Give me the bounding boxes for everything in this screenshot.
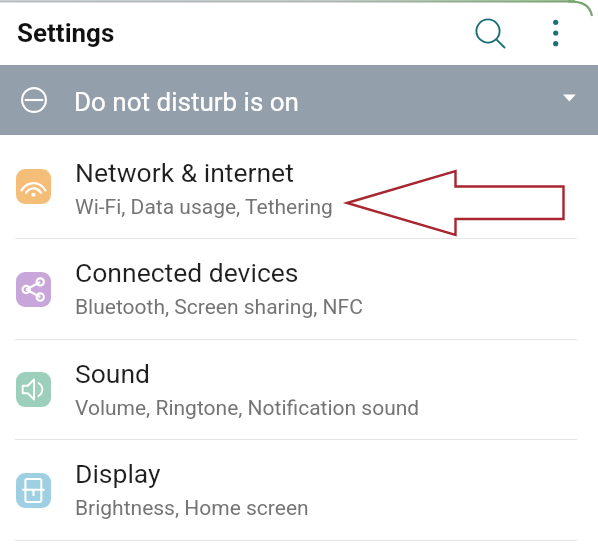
- staticText: Connected devices: [75, 257, 299, 288]
- staticText: Display: [75, 458, 161, 489]
- staticText: Settings: [17, 18, 115, 48]
- button[interactable]: Connected devices: [0, 239, 598, 339]
- staticText: Network & internet: [75, 157, 294, 188]
- button[interactable]: Display: [0, 440, 598, 540]
- staticText: Do not disturb is on: [74, 87, 299, 117]
- staticText: Volume, Ringtone, Notification sound: [75, 396, 420, 421]
- button[interactable]: Do not disturb is on: [0, 65, 598, 135]
- button[interactable]: More options: [532, 9, 580, 57]
- button[interactable]: Search: [464, 7, 512, 55]
- button[interactable]: Sound: [0, 340, 598, 439]
- button[interactable]: Network & internet: [0, 135, 598, 238]
- staticText: Bluetooth, Screen sharing, NFC: [75, 295, 363, 320]
- staticText: Brightness, Home screen: [75, 496, 309, 521]
- staticText: Sound: [75, 358, 151, 389]
- staticText: Wi-Fi, Data usage, Tethering: [75, 195, 333, 220]
